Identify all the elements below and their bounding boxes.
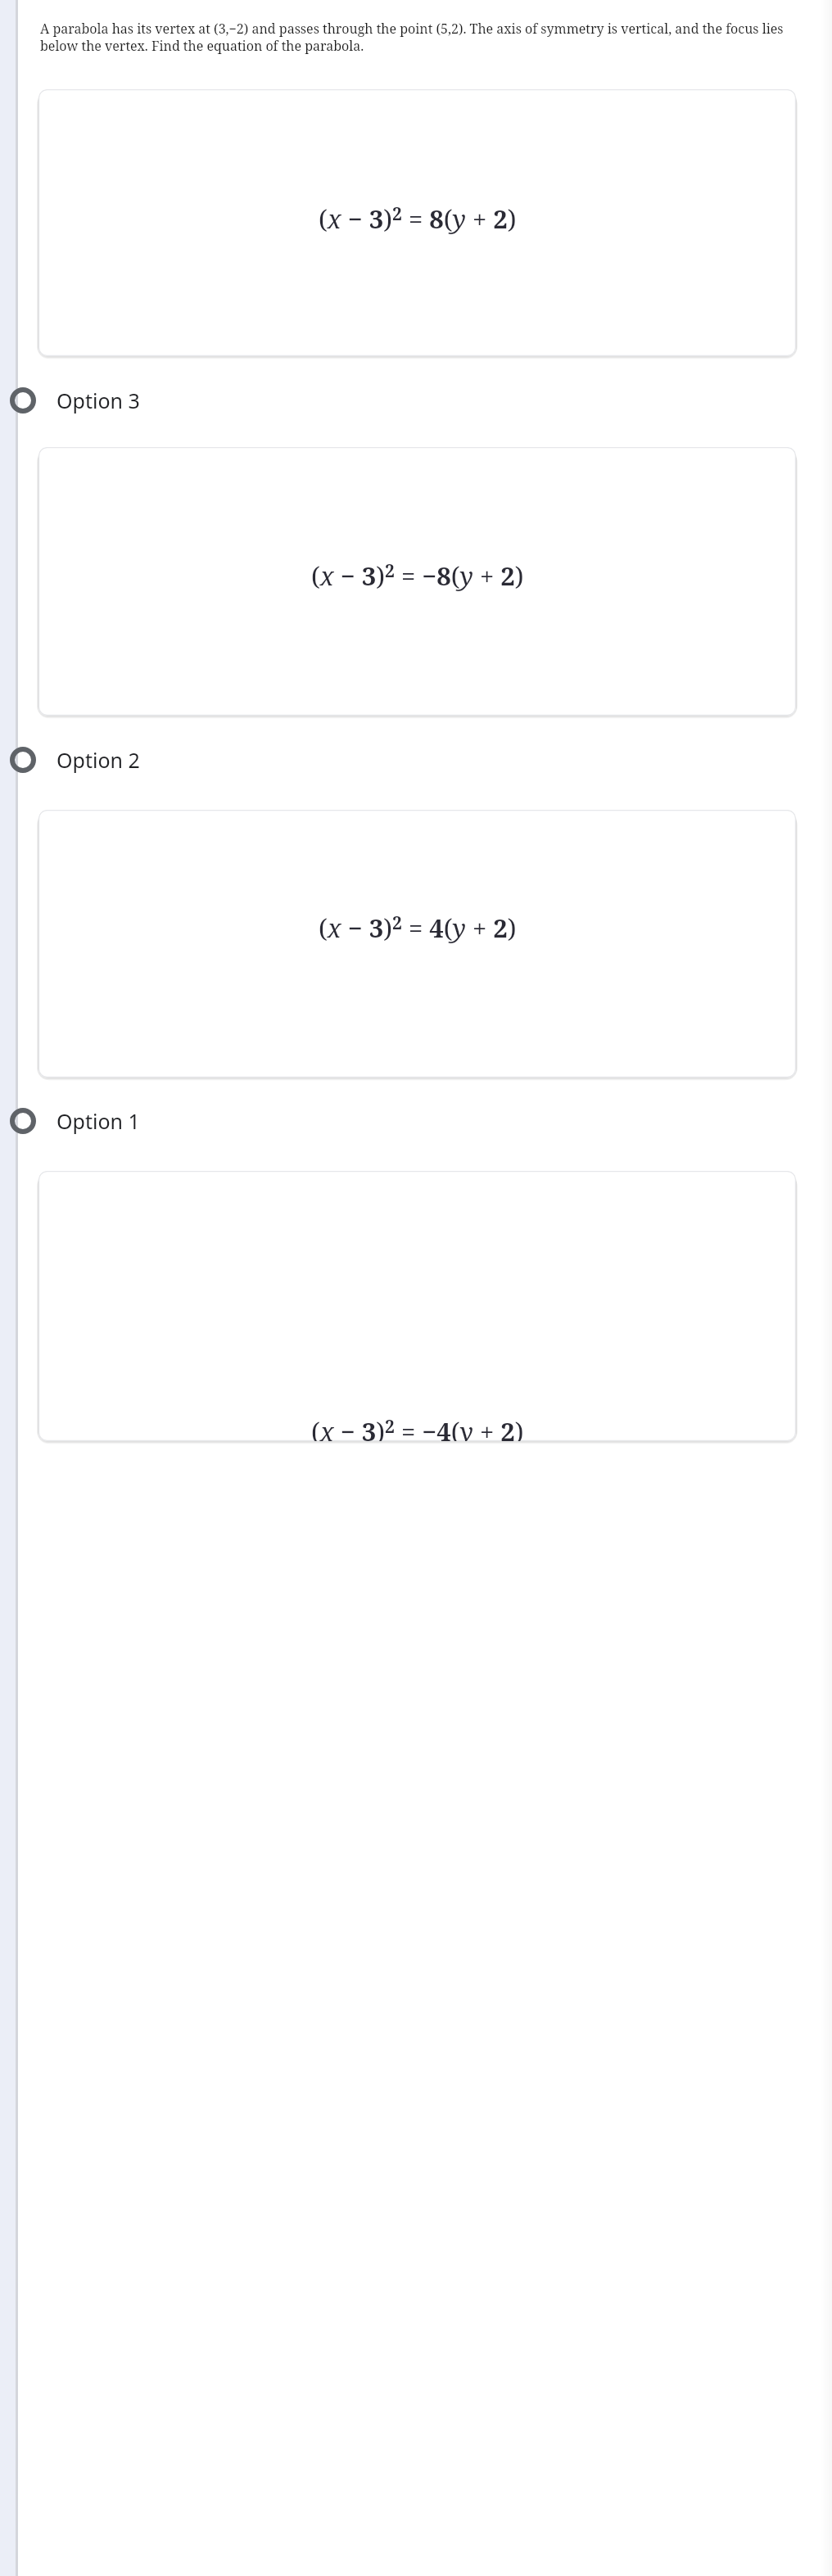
staticText: A parabola has its vertex at (3,−2) and … — [40, 20, 801, 55]
other: Select Option 2 — [8, 745, 38, 775]
staticText: (x − 3)2 = 4(y + 2) — [319, 911, 517, 945]
button[interactable]: (x − 3)2 = 8(y + 2) — [38, 89, 796, 356]
button[interactable]: Select Option 1 — [0, 1091, 832, 1150]
button[interactable]: Select Option 2 — [0, 730, 832, 789]
staticText: Option 1 — [57, 1107, 140, 1135]
button[interactable]: Select Option 3 — [0, 371, 832, 430]
staticText: (x − 3)2 = −4(y + 2) — [311, 1414, 524, 1441]
button[interactable]: (x − 3)2 = 4(y + 2) — [38, 810, 796, 1078]
staticText: Option 3 — [57, 386, 140, 414]
button[interactable]: (x − 3)2 = −4(y + 2) — [38, 1171, 796, 1441]
staticText: Option 2 — [57, 746, 140, 774]
other: Select Option 3 — [8, 386, 38, 415]
staticText: (x − 3)2 = 8(y + 2) — [319, 201, 517, 236]
other: Select Option 1 — [8, 1106, 38, 1136]
button[interactable]: (x − 3)2 = −8(y + 2) — [38, 447, 796, 716]
staticText: (x − 3)2 = −8(y + 2) — [311, 558, 524, 593]
